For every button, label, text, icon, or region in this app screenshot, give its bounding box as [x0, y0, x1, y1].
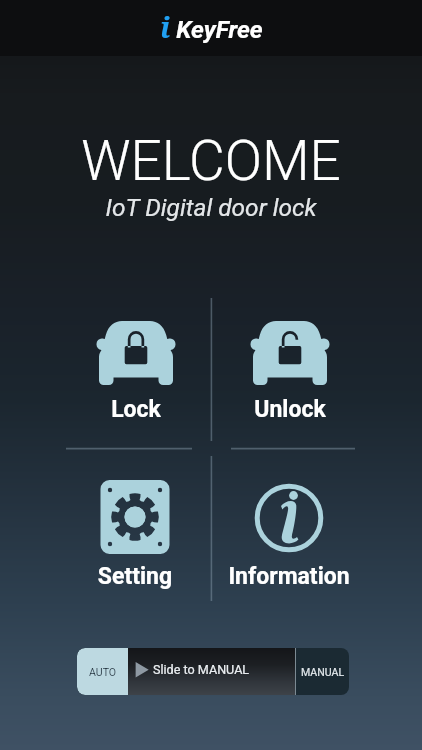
staticText: Lock [53, 396, 219, 423]
staticText: i KeyFree [160, 7, 263, 46]
button[interactable]: Information [206, 462, 372, 592]
staticText: Unlock [207, 396, 373, 423]
staticText: Information [206, 563, 372, 590]
button[interactable]: Unlock the car [207, 300, 373, 428]
staticText: Setting [52, 563, 218, 590]
staticText: WELCOME [0, 129, 422, 193]
staticText: IoT Digital door lock [0, 193, 422, 222]
staticText: MANUAL [301, 666, 345, 678]
staticText: Slide to MANUAL [153, 662, 250, 677]
staticText: AUTO [89, 666, 117, 678]
button[interactable]: Slide to MANUAL [77, 648, 349, 695]
button[interactable]: Lock the car [53, 300, 219, 428]
button[interactable]: Settings [52, 462, 218, 592]
